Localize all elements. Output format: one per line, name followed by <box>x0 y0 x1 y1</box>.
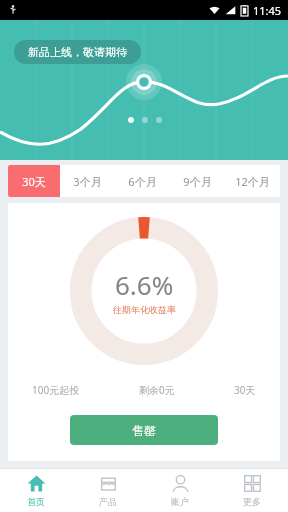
button[interactable]: 9个月 <box>170 165 225 197</box>
staticText: 往期年化收益率 <box>113 304 176 315</box>
staticText: 30天 <box>234 383 256 397</box>
staticText: 30天 <box>22 174 46 189</box>
other: 首页 <box>27 474 46 493</box>
other: 账户 <box>171 474 190 493</box>
other: 更多 <box>243 474 262 493</box>
button[interactable]: 账户 <box>144 469 216 512</box>
other: 产品 <box>99 474 118 493</box>
button[interactable]: 产品 <box>72 469 144 512</box>
staticText: 新品上线，敬请期待 <box>28 45 127 59</box>
button[interactable]: 首页 <box>0 469 72 512</box>
staticText: 产品 <box>99 496 117 507</box>
staticText: 100元起投 <box>32 383 80 397</box>
staticText: 首页 <box>27 496 45 507</box>
staticText: 12个月 <box>235 174 270 189</box>
staticText: 更多 <box>243 496 261 507</box>
staticText: 11:45 <box>253 3 282 18</box>
staticText: 3个月 <box>73 174 102 189</box>
staticText: 6.6% <box>115 267 174 302</box>
staticText: 6个月 <box>128 174 157 189</box>
button[interactable]: 30天 <box>8 165 60 197</box>
button[interactable]: 更多 <box>216 469 288 512</box>
staticText: 剩余0元 <box>139 383 175 397</box>
button[interactable]: 新品上线，敬请期待 <box>14 40 141 64</box>
staticText: 售罄 <box>132 423 156 438</box>
button[interactable]: 售罄 <box>70 415 218 445</box>
button[interactable]: 6个月 <box>115 165 170 197</box>
button[interactable]: 3个月 <box>60 165 115 197</box>
staticText: 9个月 <box>183 174 212 189</box>
button[interactable]: 12个月 <box>225 165 280 197</box>
staticText: 账户 <box>171 496 189 507</box>
